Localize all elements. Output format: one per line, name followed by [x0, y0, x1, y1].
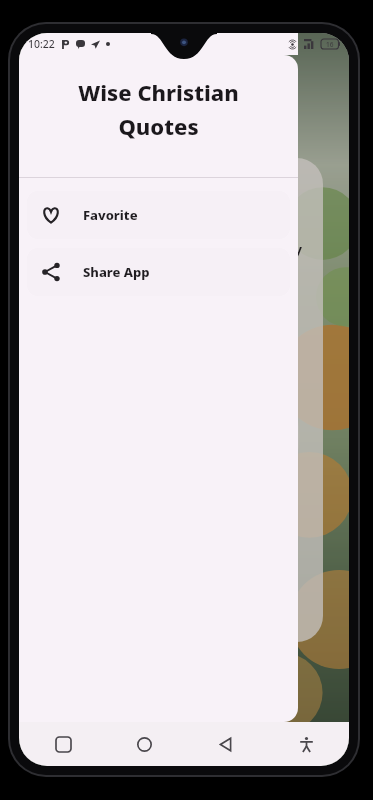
staticText: Share App [83, 263, 150, 281]
button[interactable]: Recent apps [46, 727, 80, 761]
staticText: 10:22 [28, 37, 55, 51]
staticText: 16 [326, 40, 334, 49]
button[interactable]: Accessibility [289, 727, 323, 761]
button[interactable]: Share App [27, 248, 290, 296]
staticText: He who dwells in the shelter of the Most… [64, 178, 305, 321]
staticText: Favorite [83, 206, 138, 224]
button[interactable]: Favorite [27, 191, 290, 239]
button[interactable]: Back [208, 727, 242, 761]
button[interactable]: Home [127, 727, 161, 761]
staticText: Wise Christian Quotes [19, 77, 298, 141]
